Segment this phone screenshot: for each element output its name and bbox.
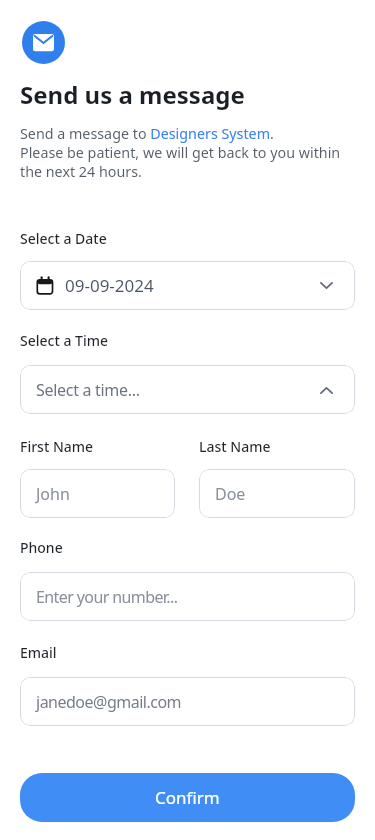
staticText: Enter your number...: [36, 586, 178, 608]
staticText: Please be patient, we will get back to y…: [20, 143, 341, 162]
staticText: Select a Time: [20, 331, 109, 350]
button[interactable]: janedoe@gmail.com: [20, 677, 355, 726]
staticText: Select a Date: [20, 229, 107, 248]
staticText: First Name: [20, 437, 94, 456]
button[interactable]: Enter your number...: [20, 572, 355, 621]
staticText: John: [36, 483, 70, 505]
button[interactable]: [22, 21, 65, 64]
staticText: Email: [20, 643, 57, 662]
staticText: Phone: [20, 538, 63, 557]
button[interactable]: 09-09-2024: [20, 261, 355, 310]
button[interactable]: Doe: [199, 469, 355, 518]
button[interactable]: Confirm: [20, 773, 355, 822]
staticText: Select a time...: [36, 379, 140, 401]
staticText: 09-09-2024: [65, 274, 154, 297]
staticText: Confirm: [155, 786, 220, 809]
staticText: janedoe@gmail.com: [36, 691, 182, 713]
staticText: Last Name: [199, 437, 271, 456]
staticText: the next 24 hours.: [20, 162, 142, 181]
button[interactable]: John: [20, 469, 175, 518]
staticText: Send us a message: [20, 78, 245, 111]
staticText: Doe: [215, 483, 246, 505]
button[interactable]: Select a time...: [20, 365, 355, 414]
staticText: Send a message to Designers System.: [20, 124, 274, 143]
